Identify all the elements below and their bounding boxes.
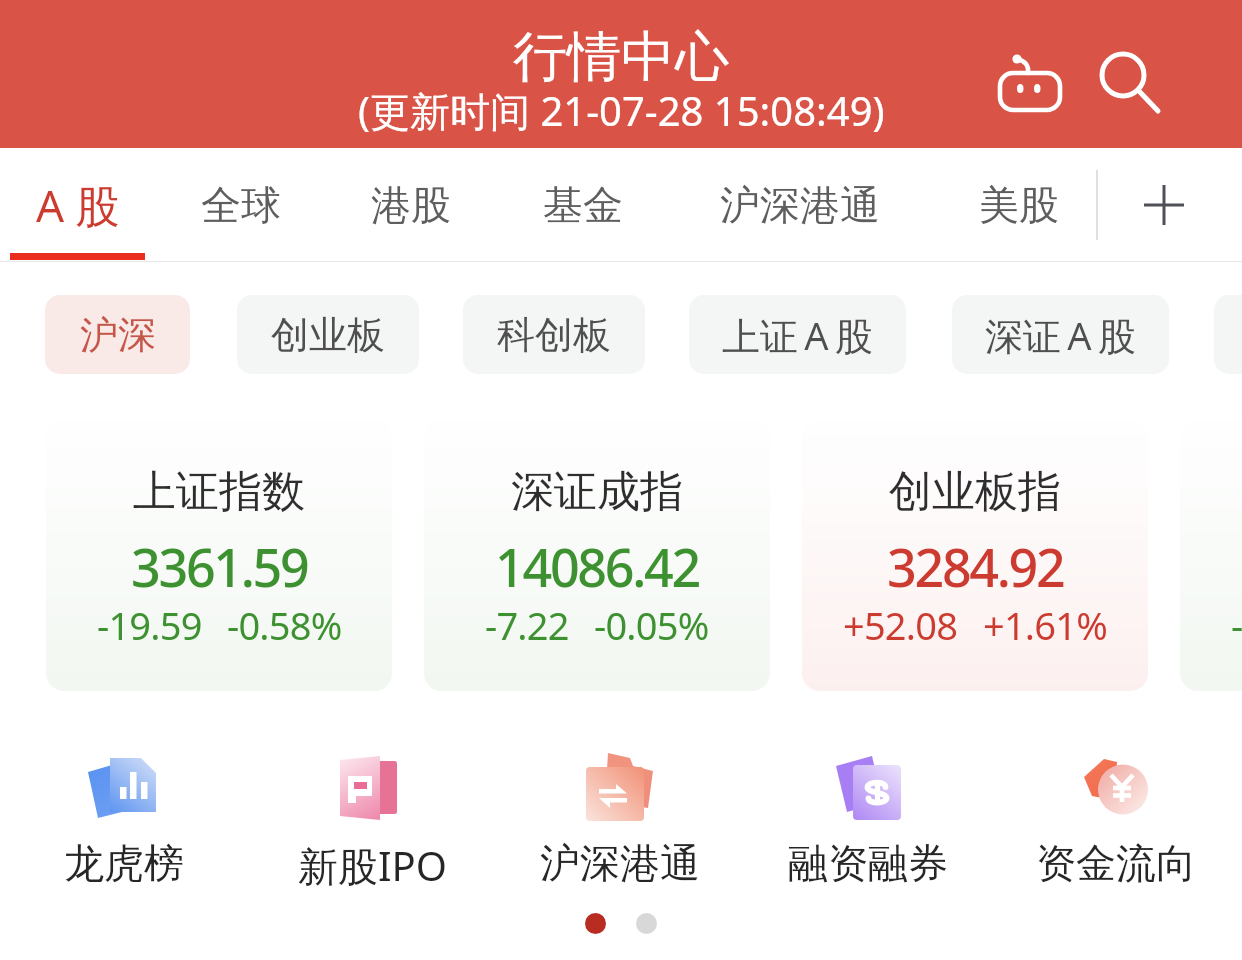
button[interactable]: A 股 [18, 148, 138, 262]
button[interactable]: 港股 [359, 148, 463, 262]
staticText: 上证指数 [133, 465, 305, 519]
button[interactable]: 创业板 [237, 295, 419, 374]
staticText: 资金流向 [1036, 838, 1196, 888]
staticText: 沪深港通 [720, 180, 880, 230]
button[interactable]: 美股 [967, 148, 1071, 262]
staticText: 3284.92 [887, 531, 1064, 602]
button[interactable]: 添加自选 [1118, 159, 1210, 251]
staticText: 创业板指 [889, 465, 1061, 519]
button[interactable]: 新股IPO [248, 742, 496, 892]
button[interactable]: 搜索 [1086, 38, 1166, 122]
staticText: -0.58% [227, 599, 342, 651]
staticText: 创业板 [271, 311, 385, 359]
staticText: 沪深港通 [540, 838, 700, 888]
staticText: 3361.59 [131, 531, 308, 602]
button[interactable]: 上证 A 股 [689, 295, 906, 374]
staticText: 深证 A 股 [985, 309, 1136, 361]
staticText: 上证 A 股 [722, 309, 873, 361]
button[interactable]: 资金流向 [992, 742, 1240, 888]
staticText: -12.33 [1231, 599, 1242, 651]
staticText: -19.59 [97, 599, 202, 651]
button[interactable]: 上证指数 [46, 420, 392, 691]
staticText: 港股 [371, 180, 451, 230]
staticText: -0.05% [594, 599, 709, 651]
staticText: +52.08 [843, 599, 958, 651]
staticText: 全球 [201, 180, 281, 230]
button[interactable]: 深证 A 股 [952, 295, 1169, 374]
staticText: 科创板 [497, 311, 611, 359]
staticText: +1.61% [983, 599, 1107, 651]
button[interactable]: 科创板 [463, 295, 645, 374]
staticText: 新股IPO [298, 838, 447, 892]
button[interactable]: 融资融券 [744, 742, 992, 888]
button[interactable]: 沪深300指 [1180, 420, 1242, 691]
button[interactable]: 沪深港通 [496, 742, 744, 888]
button[interactable]: 智能助手 [990, 50, 1070, 134]
button[interactable]: 沪深港通 [708, 148, 892, 262]
staticText: 沪深 [80, 311, 156, 359]
button[interactable]: 创业板指 [802, 420, 1148, 691]
staticText: (更新时间 21-07-28 15:08:49) [358, 83, 885, 138]
button[interactable]: 深证成指 [424, 420, 770, 691]
staticText: A 股 [36, 175, 120, 235]
staticText: 基金 [543, 180, 623, 230]
button[interactable]: 龙虎榜 [0, 742, 248, 888]
staticText: 深证成指 [511, 465, 683, 519]
button[interactable]: 基金 [531, 148, 635, 262]
staticText: -7.22 [485, 599, 569, 651]
button[interactable]: 沪深 [45, 295, 190, 374]
staticText: 美股 [979, 180, 1059, 230]
button[interactable]: 全球 [189, 148, 293, 262]
staticText: 融资融券 [788, 838, 948, 888]
staticText: 14086.42 [495, 531, 699, 602]
staticText: 行情中心 [513, 23, 729, 91]
staticText: 龙虎榜 [64, 838, 184, 888]
